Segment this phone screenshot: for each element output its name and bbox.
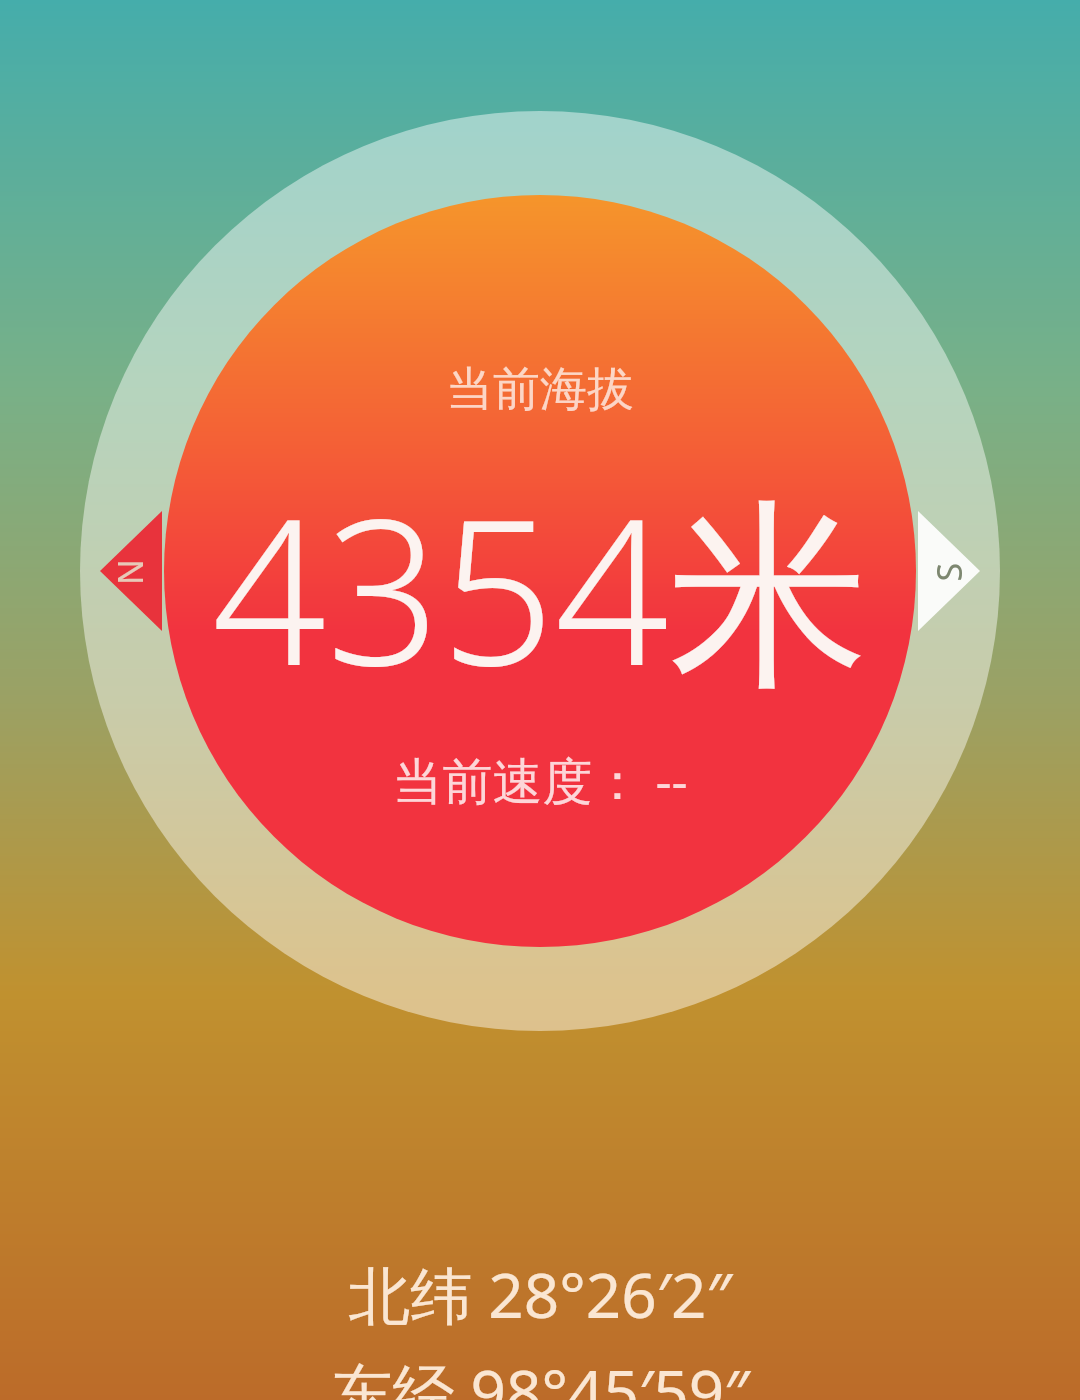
staticText: 东经 98°45′59″ xyxy=(330,1349,750,1400)
staticText: 当前速度： -- xyxy=(392,746,688,814)
button[interactable]: Altitude compass dial xyxy=(0,0,1080,1400)
staticText: S xyxy=(925,562,971,581)
staticText: 当前海拔 xyxy=(446,360,634,419)
staticText: 北纬 28°26′2″ xyxy=(348,1252,732,1337)
staticText: 4354米 xyxy=(212,451,869,724)
staticText: N xyxy=(107,559,153,585)
